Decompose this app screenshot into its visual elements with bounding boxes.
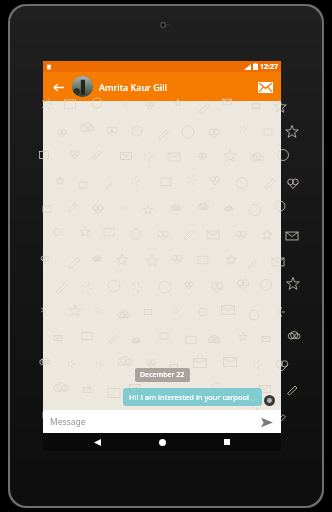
button[interactable]: Messages [254,76,276,98]
button[interactable]: Amrita Kaur Gill [99,81,254,93]
button[interactable]: Home [151,433,173,451]
button[interactable]: Sender avatar [264,395,275,406]
staticText: Message [50,416,86,428]
button[interactable]: Recents [216,433,238,451]
button[interactable]: Back [86,433,108,451]
staticText: December 22 [140,370,185,380]
button[interactable]: Back [48,77,68,97]
button[interactable]: Profile photo [72,76,93,97]
button[interactable]: Hi! I am interested in your carpool [123,388,262,406]
staticText: 12:27 [260,62,278,72]
button[interactable]: Message [50,416,257,428]
staticText: Amrita Kaur Gill [99,81,168,93]
button[interactable]: Send [257,412,277,432]
staticText: Hi! I am interested in your carpool [129,392,249,402]
